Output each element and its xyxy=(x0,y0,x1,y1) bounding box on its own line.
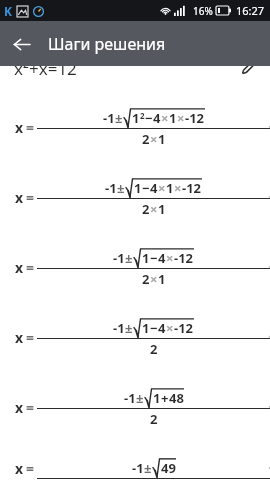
staticText: × xyxy=(150,270,158,288)
staticText: 1 xyxy=(153,389,161,407)
staticText: × xyxy=(166,319,174,337)
staticText: 1 xyxy=(158,200,166,218)
button[interactable]: Назад xyxy=(0,23,42,65)
staticText: -1 xyxy=(124,389,136,407)
staticText: ± xyxy=(125,319,133,337)
staticText: x xyxy=(15,258,24,277)
staticText: 2 xyxy=(140,110,145,121)
staticText: ± xyxy=(115,109,123,127)
staticText: − xyxy=(142,179,150,197)
staticText: 4 xyxy=(158,319,166,337)
button[interactable]: x xyxy=(0,106,270,148)
button[interactable]: x xyxy=(0,456,270,480)
staticText: Шаги решения xyxy=(48,33,166,55)
staticText: 1 xyxy=(142,319,150,337)
staticText: 2 xyxy=(150,340,158,358)
staticText: -12 xyxy=(174,249,194,267)
staticText: -1 xyxy=(105,179,117,197)
staticText: = xyxy=(26,258,35,277)
button[interactable]: x xyxy=(0,316,270,358)
staticText: 16:27 xyxy=(236,3,265,18)
staticText: − xyxy=(145,109,153,127)
staticText: x xyxy=(15,188,24,207)
staticText: x xyxy=(15,459,24,478)
staticText: -1 xyxy=(113,319,125,337)
staticText: 1 xyxy=(169,109,177,127)
staticText: 1 xyxy=(166,179,174,197)
staticText: − xyxy=(150,319,158,337)
staticText: 2 xyxy=(142,270,150,288)
staticText: K xyxy=(4,3,12,19)
staticText: x xyxy=(15,398,24,417)
staticText: ± xyxy=(125,249,133,267)
staticText: -12 xyxy=(185,109,205,127)
staticText: × xyxy=(174,179,182,197)
staticText: 16% xyxy=(193,4,213,18)
staticText: × xyxy=(150,200,158,218)
staticText: x xyxy=(15,328,24,347)
staticText: × xyxy=(158,179,166,197)
staticText: 2 xyxy=(142,200,150,218)
staticText: 1 xyxy=(132,109,140,127)
staticText: 1 xyxy=(158,130,166,148)
staticText: + xyxy=(161,389,169,407)
staticText: 4 xyxy=(153,109,161,127)
button[interactable]: x xyxy=(0,176,270,218)
staticText: x xyxy=(15,118,24,137)
staticText: × xyxy=(150,130,158,148)
staticText: = xyxy=(26,188,35,207)
button[interactable]: x xyxy=(0,246,270,288)
staticText: 1 xyxy=(142,249,150,267)
staticText: 48 xyxy=(169,389,184,407)
button[interactable]: x xyxy=(0,386,270,428)
staticText: 2 xyxy=(150,410,158,428)
button[interactable]: Редактировать xyxy=(236,66,258,77)
staticText: 2 xyxy=(142,130,150,148)
staticText: 4 xyxy=(158,249,166,267)
staticText: ± xyxy=(136,389,144,407)
staticText: − xyxy=(150,249,158,267)
staticText: 1 xyxy=(134,179,142,197)
staticText: 4 xyxy=(150,179,158,197)
staticText: -1 xyxy=(132,459,144,477)
staticText: ± xyxy=(144,459,152,477)
staticText: 49 xyxy=(161,459,176,477)
staticText: -1 xyxy=(103,109,115,127)
staticText: × xyxy=(177,109,185,127)
staticText: -12 xyxy=(182,179,202,197)
staticText: = xyxy=(26,118,35,137)
staticText: 1 xyxy=(158,270,166,288)
staticText: x²+x=12 xyxy=(14,66,77,77)
staticText: -12 xyxy=(174,319,194,337)
staticText: × xyxy=(161,109,169,127)
staticText: -1 xyxy=(113,249,125,267)
staticText: = xyxy=(26,398,35,417)
staticText: = xyxy=(26,328,35,347)
staticText: = xyxy=(26,459,35,478)
staticText: × xyxy=(166,249,174,267)
staticText: ± xyxy=(117,179,125,197)
